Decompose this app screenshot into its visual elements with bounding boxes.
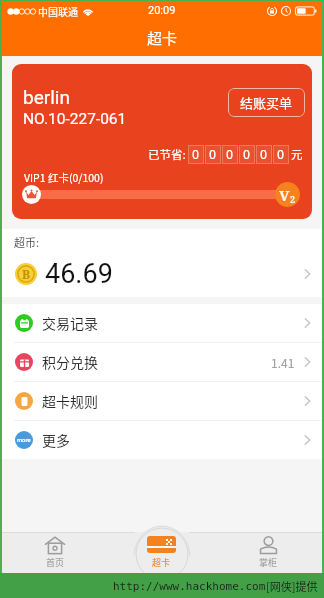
staticText: 1.41 [271,354,295,371]
staticText: http://www.hackhome.com [113,580,266,593]
staticText: 0 [192,147,200,162]
staticText: 积分兑换 [42,352,98,372]
staticText: 0 [226,147,234,162]
button[interactable]: Shopkeeper [215,532,322,573]
staticText: B [22,266,31,282]
staticText: 结账买单 [240,93,293,112]
staticText: 46.69 [45,258,113,290]
staticText: more [17,436,31,444]
staticText: 0 [243,147,251,162]
staticText: 中国联通 [38,4,78,18]
staticText: 超卡 [152,556,171,569]
staticText: 交易记录 [42,313,98,333]
staticText: 超币: [14,234,40,250]
staticText: [网侠]提供 [266,578,318,594]
staticText: 20:09 [148,4,176,17]
button[interactable]: Home [2,532,108,573]
staticText: 超卡规则 [42,391,98,411]
staticText: 超卡 [147,27,178,49]
staticText: 0 [209,147,217,162]
staticText: 元 [291,146,303,163]
button[interactable]: 交易记录 [2,304,322,342]
staticText: 已节省: [148,146,186,163]
staticText: V [279,185,290,205]
staticText: NO.10-227-061 [23,110,127,128]
button[interactable]: 结账买单 [228,88,305,117]
button[interactable]: B [2,250,322,297]
staticText: 首页 [46,556,65,569]
button[interactable]: 超卡规则 [2,382,322,420]
button[interactable]: more [2,421,322,459]
staticText: VIP1 红卡(0/100) [24,170,104,185]
staticText: 0 [260,147,268,162]
staticText: 2 [290,193,296,205]
button[interactable]: berlin [12,64,312,219]
staticText: 掌柜 [259,556,278,569]
button[interactable]: Super card [108,532,215,573]
button[interactable]: 积分兑换 [2,343,322,381]
staticText: 0 [277,147,285,162]
staticText: 更多 [42,430,70,450]
staticText: berlin [23,86,70,108]
